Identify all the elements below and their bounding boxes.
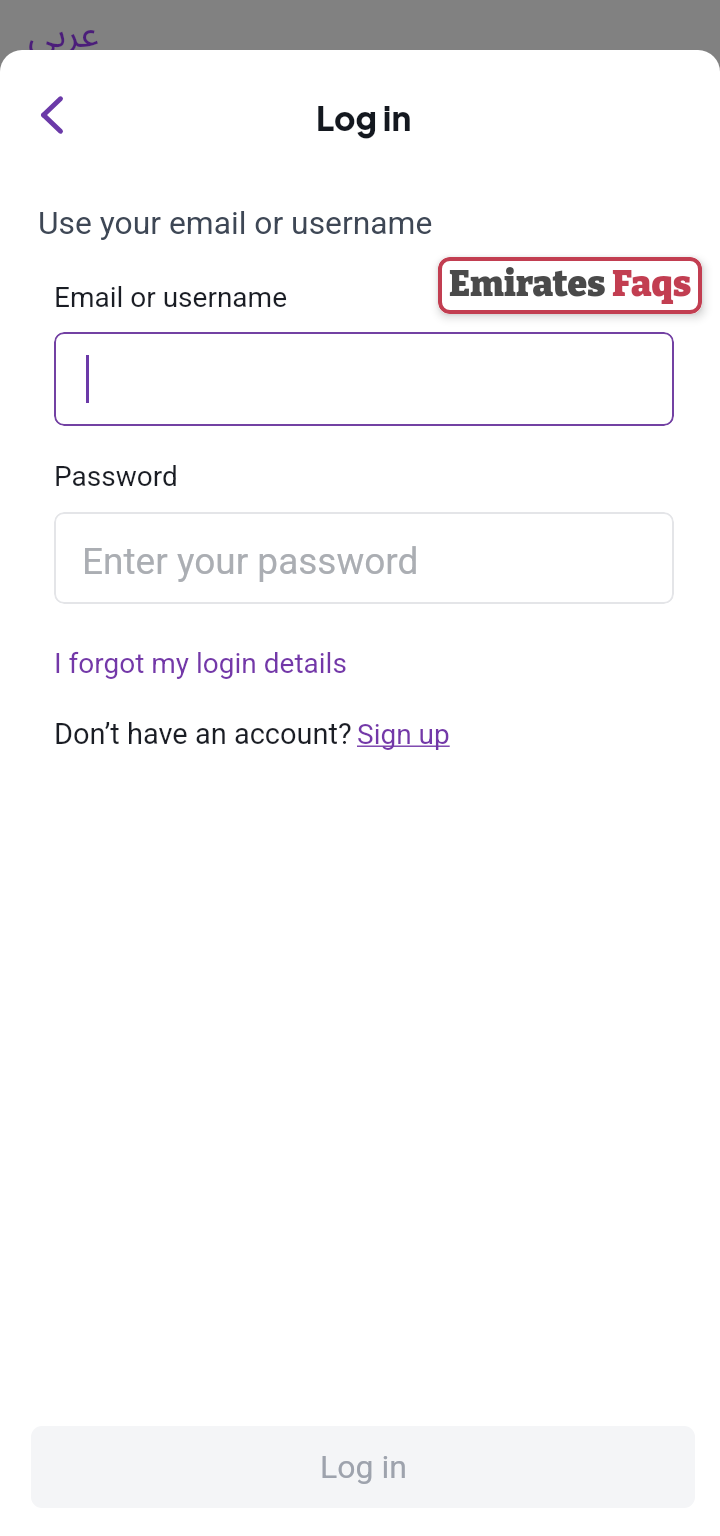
staticText: Emirates <box>449 263 612 306</box>
button[interactable]: Back <box>22 85 82 145</box>
button[interactable]: Enter your password <box>54 512 674 604</box>
staticText: Faqs <box>612 263 692 306</box>
staticText: Email or username <box>54 281 287 314</box>
staticText: Sign up <box>357 718 450 751</box>
button[interactable] <box>54 332 674 426</box>
staticText: Don’t have an account? <box>54 717 352 751</box>
staticText: Log in <box>320 1448 407 1486</box>
staticText: Use your email or username <box>38 204 433 241</box>
staticText: Enter your password <box>82 540 419 583</box>
button[interactable]: I forgot my login details <box>54 647 347 680</box>
staticText: I forgot my login details <box>54 647 347 680</box>
staticText: Password <box>54 460 178 493</box>
staticText: Log in <box>316 97 412 139</box>
button[interactable]: Sign up <box>357 718 450 751</box>
button[interactable]: Log in <box>31 1426 695 1508</box>
staticText: عربي <box>28 0 100 75</box>
